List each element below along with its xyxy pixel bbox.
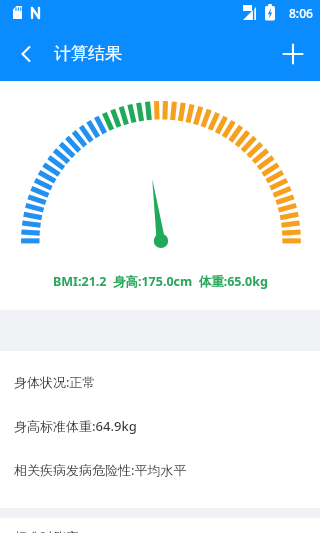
staticText: 计算结果 bbox=[54, 43, 122, 64]
staticText: BMI:21.2 身高:175.0cm 体重:65.0kg bbox=[53, 273, 268, 290]
staticText: 8:06 bbox=[289, 5, 313, 21]
button[interactable]: Add bbox=[271, 32, 315, 76]
button[interactable]: 相关疾病发病危险性:平均水平 bbox=[0, 461, 320, 479]
button[interactable]: 身体状况:正常 bbox=[0, 373, 320, 391]
button[interactable]: Back bbox=[5, 33, 47, 75]
button[interactable]: 身高标准体重:64.9kg bbox=[0, 417, 320, 435]
staticText: 标准时脂率 bbox=[14, 529, 79, 533]
